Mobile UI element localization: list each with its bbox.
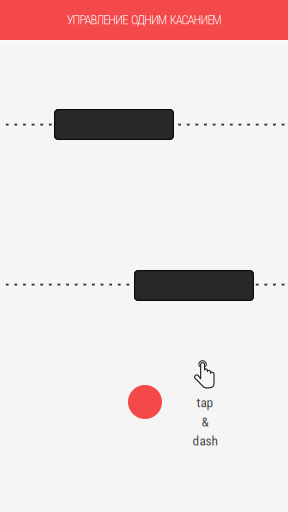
staticText: & xyxy=(201,414,208,430)
staticText: tap xyxy=(196,395,213,411)
button[interactable]: Tap to dash xyxy=(0,0,288,512)
staticText: dash xyxy=(192,433,217,449)
staticText: УПРАВЛЕНИЕ ОДНИМ КАСАНИЕМ xyxy=(67,13,221,27)
